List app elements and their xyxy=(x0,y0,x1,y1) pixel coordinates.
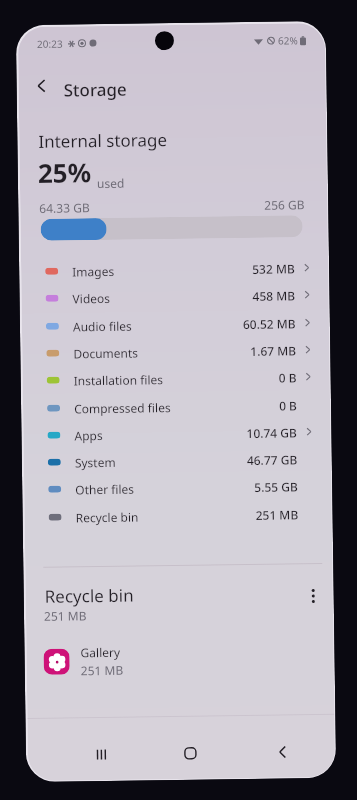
staticText: 458 MB xyxy=(252,287,296,304)
staticText: Installation files xyxy=(74,371,164,388)
staticText: 0 B xyxy=(279,369,297,385)
staticText: Videos xyxy=(72,290,111,306)
staticText: 25% xyxy=(37,154,92,190)
staticText: 10.74 GB xyxy=(246,424,297,441)
button[interactable]: Recents xyxy=(84,737,118,771)
button[interactable]: Compressed files xyxy=(23,391,330,422)
staticText: Recycle bin xyxy=(44,584,134,608)
staticText: 64.33 GB xyxy=(39,199,90,216)
button[interactable]: Back xyxy=(24,69,59,103)
button[interactable]: Apps xyxy=(23,418,331,449)
button[interactable]: Back xyxy=(265,734,299,769)
staticText: Apps xyxy=(74,427,104,443)
button[interactable]: Installation files xyxy=(22,363,330,394)
staticText: Compressed files xyxy=(74,399,171,416)
staticText: 532 MB xyxy=(252,260,295,277)
staticText: 0 B xyxy=(279,397,297,413)
staticText: 251 MB xyxy=(44,607,87,624)
button[interactable]: Documents xyxy=(22,336,329,367)
button[interactable]: Other files xyxy=(24,472,331,503)
button[interactable]: Recycle bin xyxy=(24,500,332,531)
staticText: 251 MB xyxy=(81,662,124,678)
button[interactable]: Images xyxy=(21,254,328,285)
button[interactable]: System xyxy=(24,445,331,476)
button[interactable]: Gallery xyxy=(35,639,236,682)
staticText: 46.77 GB xyxy=(247,451,298,468)
button[interactable]: Audio files xyxy=(22,309,329,340)
staticText: Images xyxy=(72,263,114,279)
staticText: Storage xyxy=(63,78,128,101)
staticText: 251 MB xyxy=(255,506,299,523)
staticText: Internal storage xyxy=(38,128,167,153)
staticText: used xyxy=(97,175,125,191)
staticText: 256 GB xyxy=(264,196,305,213)
button[interactable]: Home xyxy=(173,736,207,770)
button[interactable]: Videos xyxy=(21,281,329,312)
staticText: Other files xyxy=(75,481,134,497)
staticText: 1.67 MB xyxy=(250,342,296,359)
staticText: Audio files xyxy=(73,318,132,334)
staticText: Recycle bin xyxy=(75,508,139,525)
staticText: 20:23 xyxy=(37,36,63,51)
staticText: 5.55 GB xyxy=(254,478,298,495)
staticText: Gallery xyxy=(80,644,121,660)
staticText: 60.52 MB xyxy=(243,315,296,332)
button[interactable]: More options xyxy=(297,581,328,611)
staticText: Documents xyxy=(73,344,138,361)
staticText: 62% xyxy=(278,33,298,48)
staticText: System xyxy=(75,454,116,470)
